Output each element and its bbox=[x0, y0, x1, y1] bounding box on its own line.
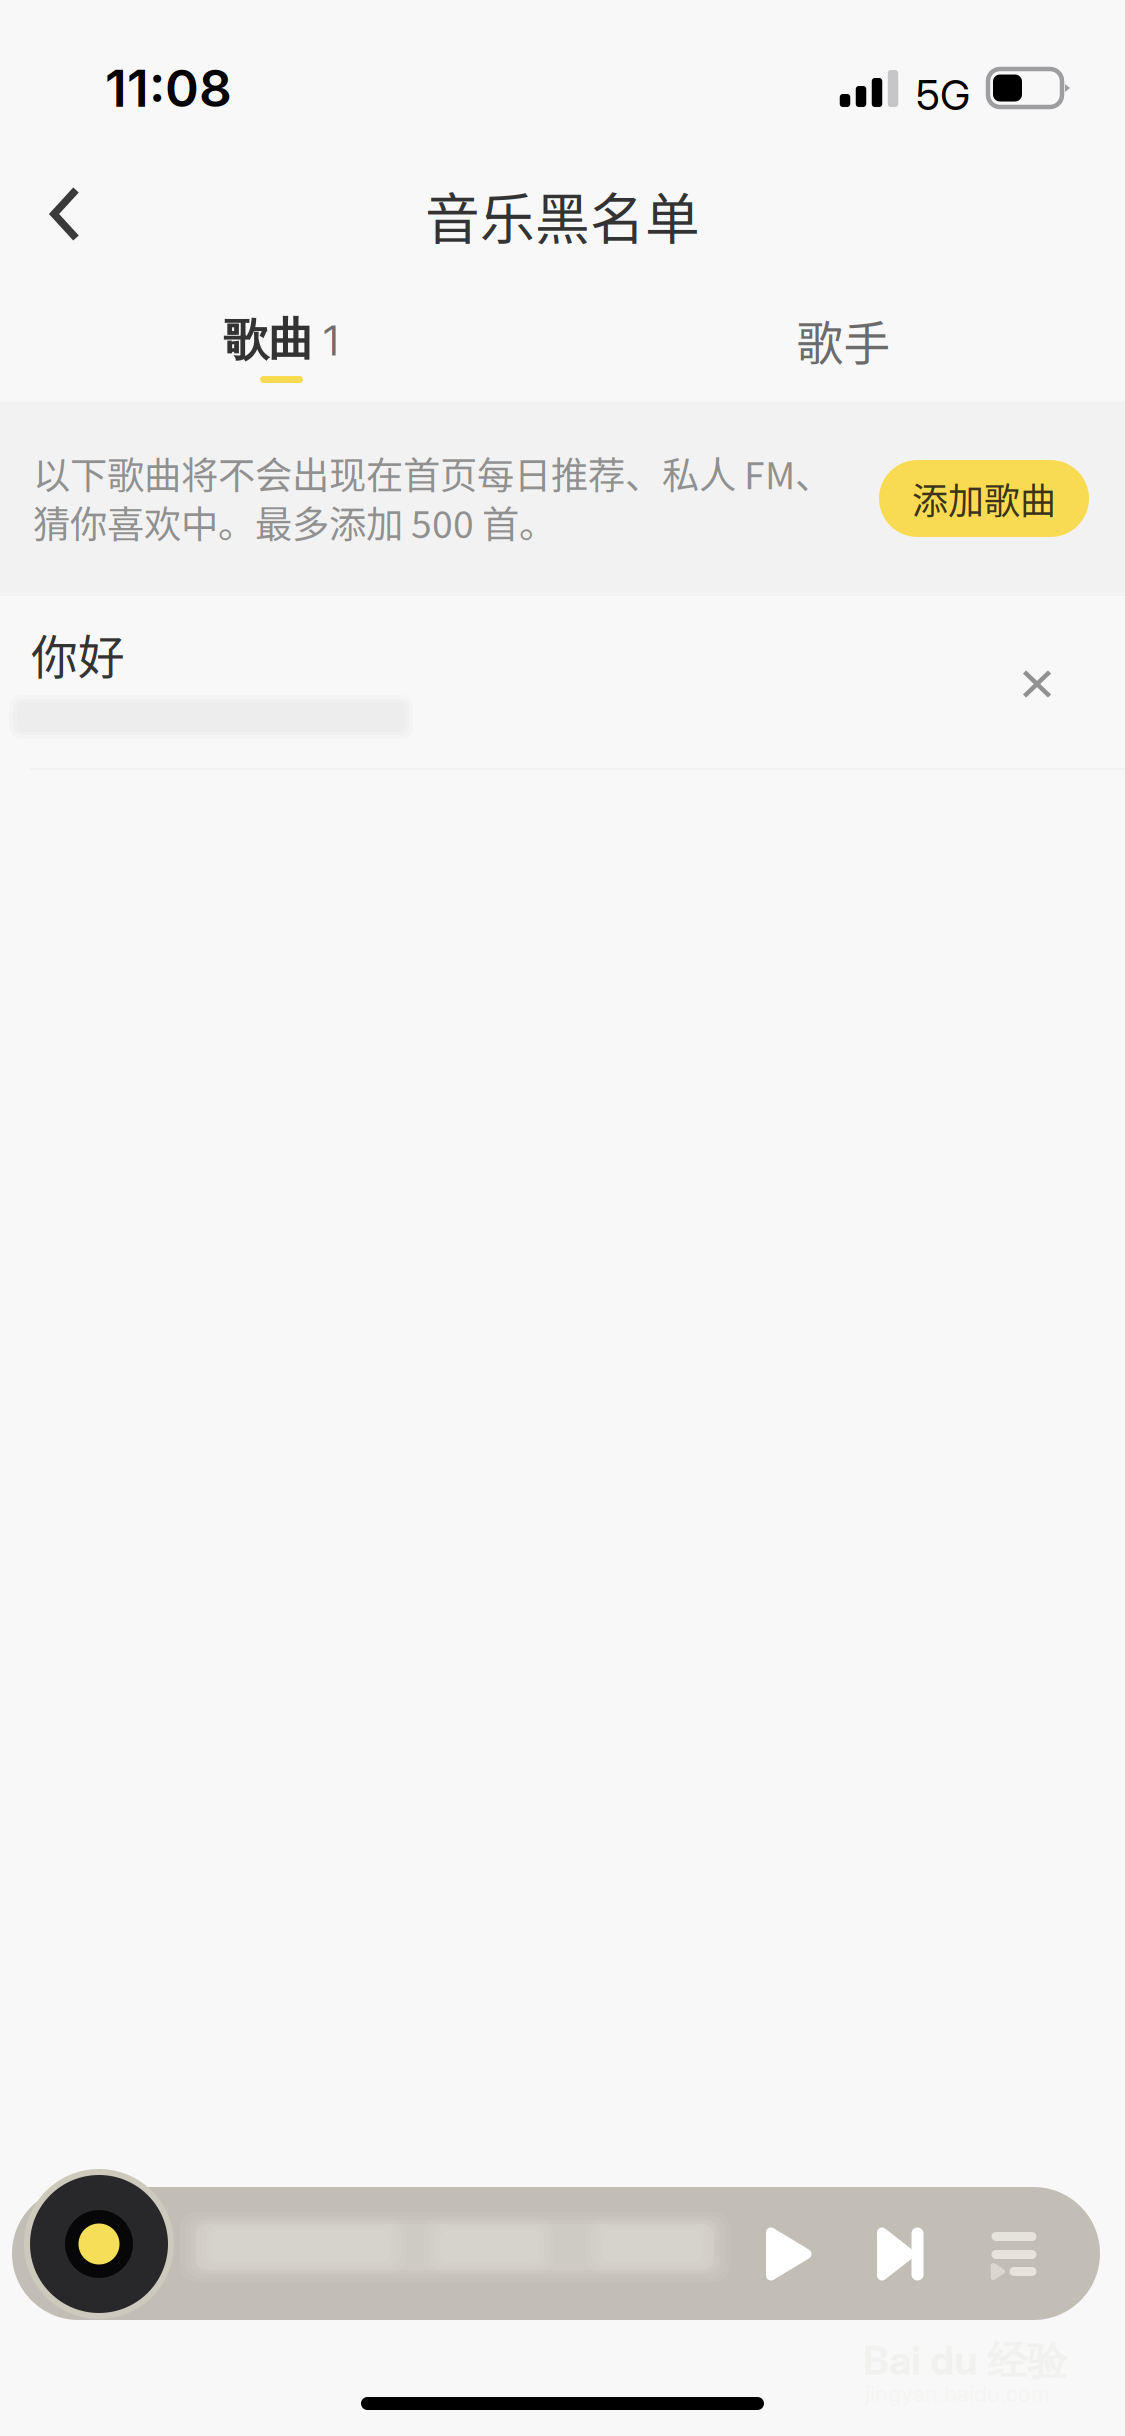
staticText: 猜你喜欢中。最多添加 500 首。 bbox=[33, 495, 556, 549]
staticText: 你好 bbox=[31, 620, 125, 688]
button[interactable]: 歌曲 bbox=[0, 280, 562, 402]
staticText: 5G bbox=[916, 70, 970, 120]
button[interactable]: 你好 bbox=[0, 608, 1125, 780]
staticText: 1 bbox=[323, 315, 338, 365]
button[interactable]: Now playing bbox=[24, 2169, 174, 2319]
button[interactable]: Next bbox=[847, 2187, 955, 2321]
button[interactable]: 歌手 bbox=[562, 280, 1125, 402]
staticText: 歌手 bbox=[796, 306, 890, 374]
button[interactable]: 添加歌曲 bbox=[879, 460, 1089, 537]
staticText: 11:08 bbox=[105, 57, 232, 119]
button[interactable]: Playlist bbox=[960, 2187, 1068, 2321]
staticText: Bai du 经验 bbox=[863, 2336, 1067, 2387]
button[interactable]: Play bbox=[736, 2187, 844, 2321]
staticText: 音乐黑名单 bbox=[425, 175, 700, 255]
button[interactable]: Remove bbox=[987, 634, 1087, 734]
staticText: 添加歌曲 bbox=[912, 472, 1056, 524]
staticText: 以下歌曲将不会出现在首页每日推荐、私人 FM、 bbox=[33, 446, 832, 500]
staticText: 歌曲 bbox=[223, 311, 313, 368]
button[interactable]: Back bbox=[8, 155, 126, 273]
